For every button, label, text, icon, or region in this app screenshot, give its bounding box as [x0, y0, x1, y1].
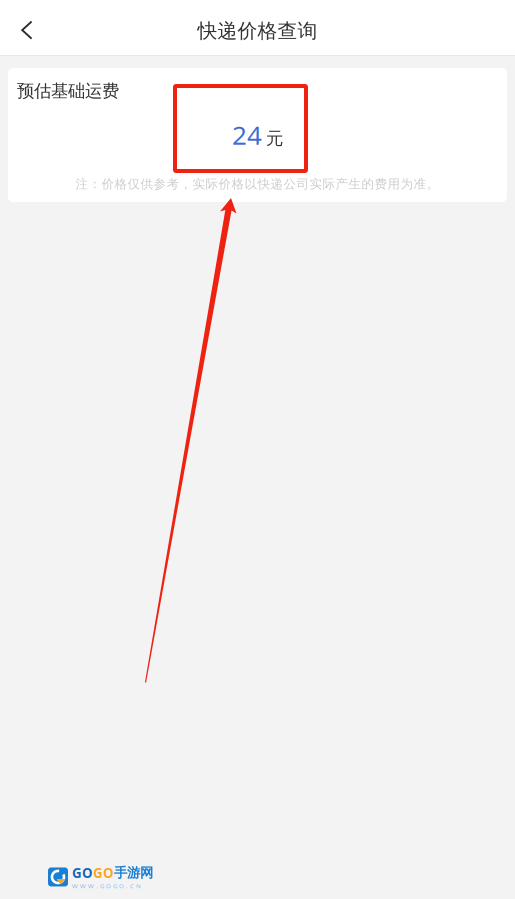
staticText: GO [72, 864, 93, 882]
staticText: 手游网 [114, 865, 153, 881]
staticText: 快递价格查询 [197, 19, 317, 43]
button[interactable]: Back [0, 0, 52, 56]
staticText: 24 [232, 117, 262, 152]
staticText: 元 [266, 128, 283, 149]
staticText: 预估基础运费 [17, 80, 119, 102]
staticText: W W W . G O G O . C N [72, 882, 141, 890]
staticText: 注：价格仅供参考，实际价格以快递公司实际产生的费用为准。 [75, 176, 439, 192]
staticText: GO [93, 864, 114, 882]
